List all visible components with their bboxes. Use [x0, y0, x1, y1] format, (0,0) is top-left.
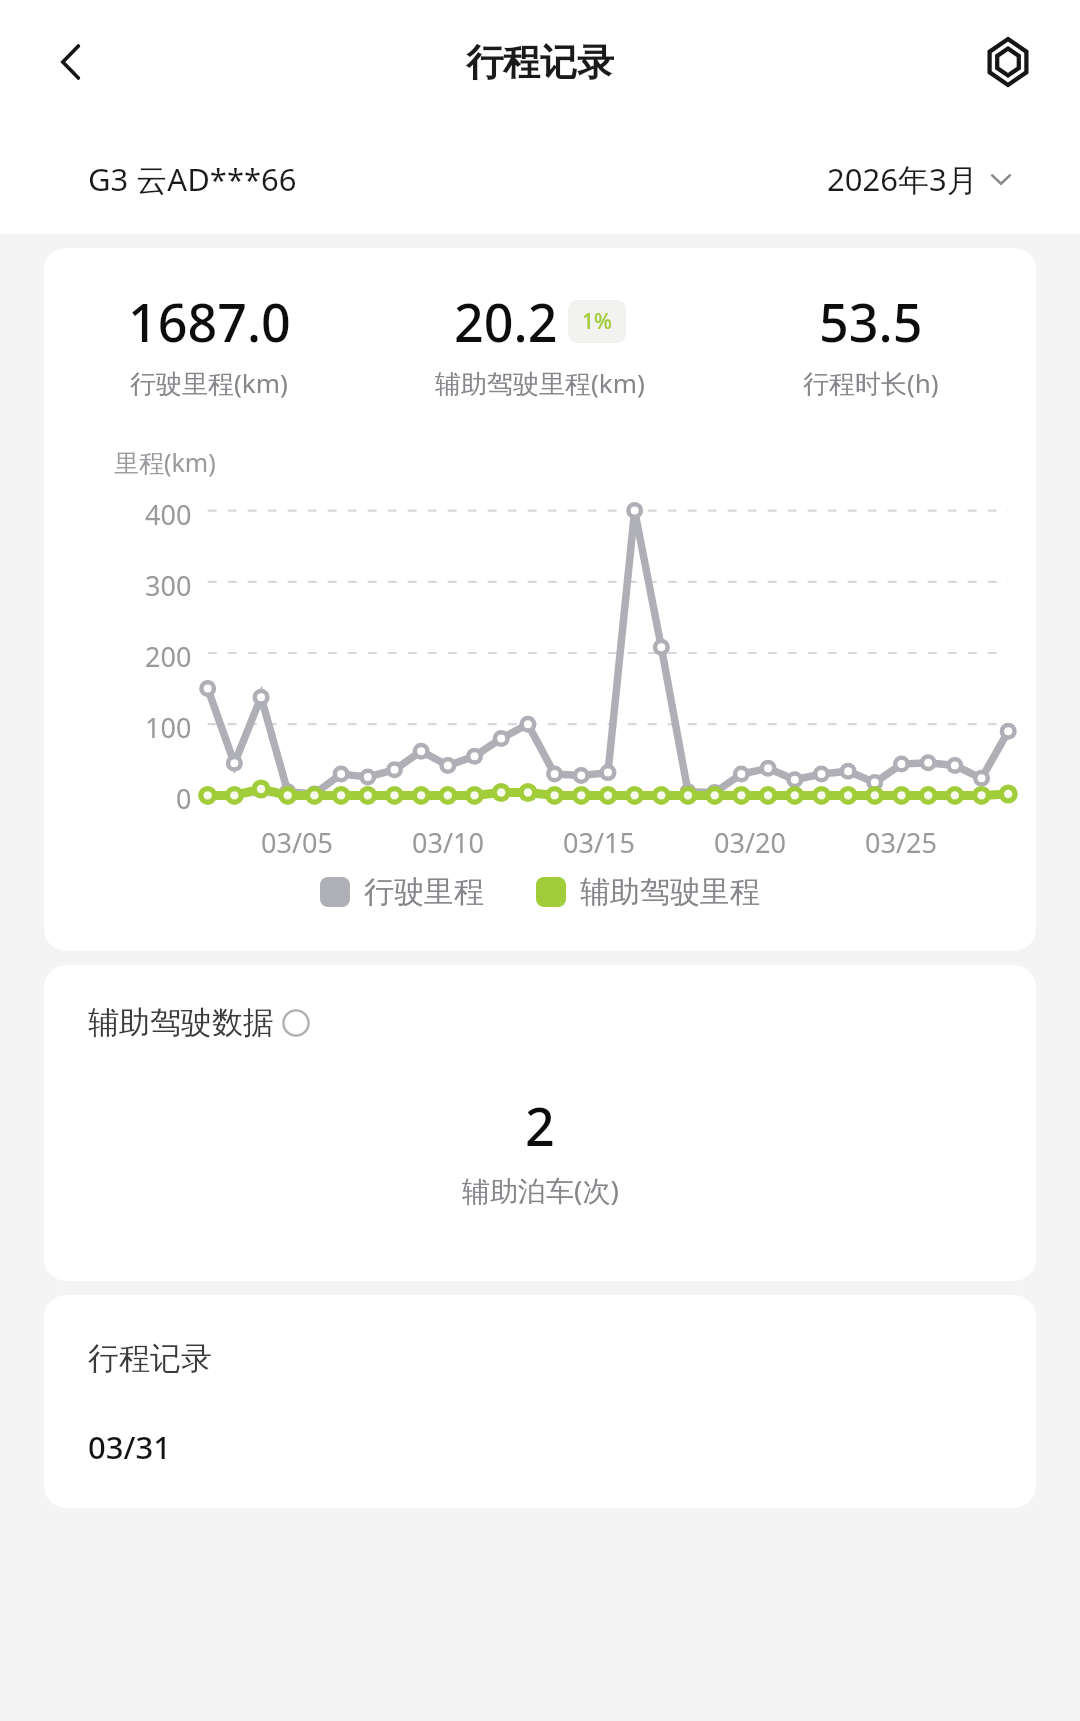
staticText: 行驶里程: [364, 873, 484, 911]
staticText: 行程时长(h): [803, 365, 939, 401]
staticText: 03/15: [563, 824, 635, 861]
staticText: 200: [145, 638, 192, 668]
staticText: 1687.0: [128, 286, 291, 357]
staticText: 行程记录: [88, 1339, 212, 1378]
staticText: 行程记录: [466, 39, 614, 86]
staticText: 03/25: [865, 824, 937, 861]
button[interactable]: Settings: [978, 32, 1038, 92]
staticText: 0: [176, 780, 192, 810]
staticText: 辅助泊车(次): [462, 1171, 619, 1209]
button[interactable]: 行驶里程: [320, 873, 484, 911]
button[interactable]: 辅助驾驶里程: [536, 873, 760, 911]
staticText: 03/31: [88, 1426, 171, 1468]
staticText: 03/20: [714, 824, 786, 861]
staticText: G3 云AD***66: [88, 158, 297, 200]
staticText: 辅助驾驶数据: [88, 1003, 274, 1042]
staticText: 400: [145, 496, 192, 526]
staticText: 行驶里程(km): [130, 365, 288, 401]
staticText: 20.2: [454, 286, 558, 357]
button[interactable]: 辅助驾驶数据: [44, 965, 1036, 1281]
staticText: 辅助驾驶里程(km): [435, 365, 645, 401]
staticText: 2026年3月: [827, 158, 978, 200]
staticText: 03/10: [412, 824, 484, 861]
staticText: 里程(km): [114, 445, 216, 479]
staticText: 300: [145, 567, 192, 597]
button[interactable]: 1687.0: [44, 248, 1036, 951]
staticText: 辅助驾驶里程: [580, 873, 760, 911]
staticText: 100: [145, 709, 192, 739]
button[interactable]: 2026年3月: [827, 158, 1014, 200]
staticText: 53.5: [819, 286, 923, 357]
button[interactable]: 行程记录: [44, 1295, 1036, 1508]
staticText: 2: [525, 1090, 555, 1161]
button[interactable]: Back: [44, 34, 100, 90]
staticText: 03/05: [261, 824, 333, 861]
staticText: 1%: [582, 307, 612, 336]
